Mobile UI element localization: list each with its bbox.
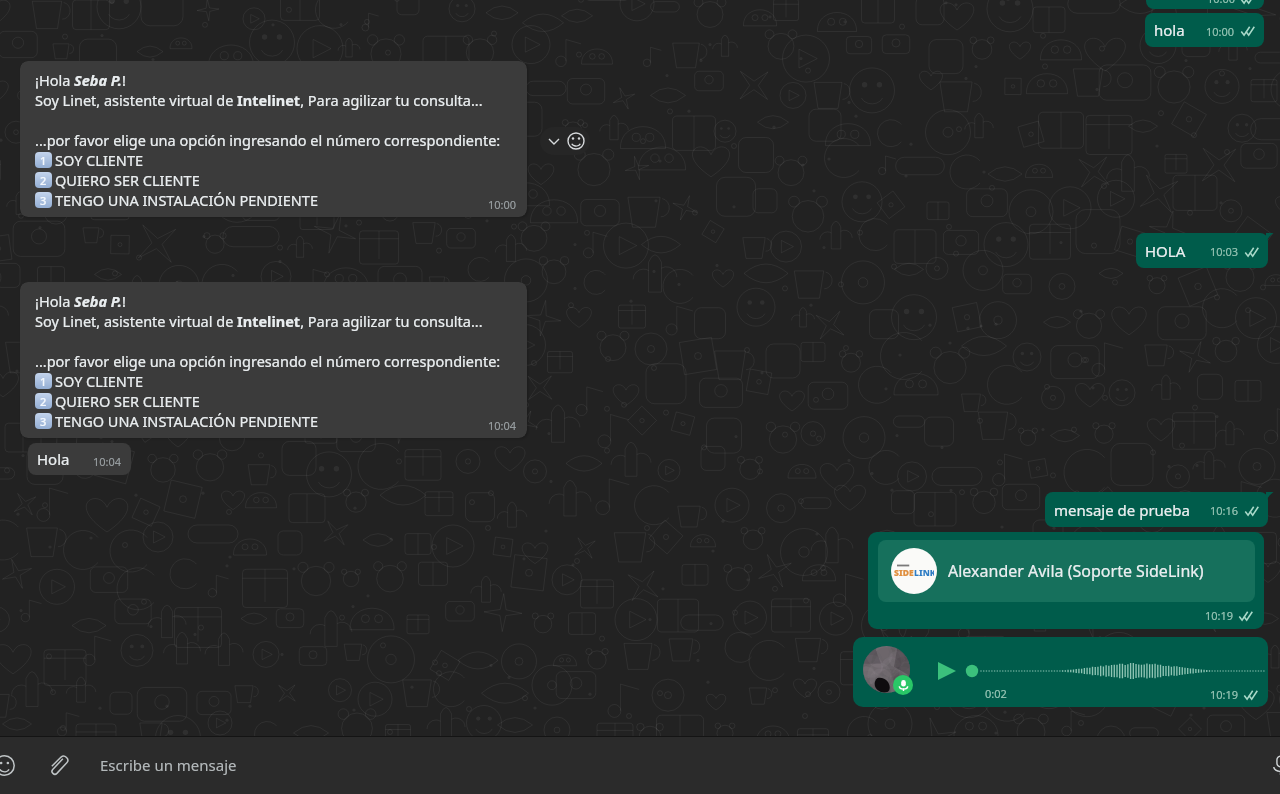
staticText: 1 <box>40 374 47 389</box>
staticText: ...por favor elige una opción ingresando… <box>35 351 501 371</box>
staticText: Soy Linet, asistente virtual de Inteline… <box>35 90 483 110</box>
staticText: ¡Hola Seba P.! <box>35 70 126 90</box>
staticText: 3 <box>40 193 47 208</box>
staticText: 10:19 <box>1205 608 1234 623</box>
button[interactable]: mensaje de prueba <box>1045 492 1268 527</box>
button[interactable]: SIDE <box>868 532 1264 629</box>
staticText: mensaje de prueba <box>1054 500 1190 520</box>
staticText: TENGO UNA INSTALACIÓN PENDIENTE <box>55 411 318 431</box>
staticText: 0:02 <box>985 686 1007 701</box>
staticText: 10:00 <box>1207 0 1236 6</box>
staticText: SOY CLIENTE <box>55 150 143 170</box>
staticText: QUIERO SER CLIENTE <box>55 391 200 411</box>
staticText: 1 <box>40 153 47 168</box>
staticText: 10:04 <box>93 454 122 469</box>
staticText: SIDE <box>894 567 914 579</box>
staticText: 10:00 <box>1206 24 1235 39</box>
staticText: ¡Hola Seba P.! <box>35 291 126 311</box>
staticText: 10:19 <box>1210 687 1239 702</box>
staticText: Alexander Avila (Soporte SideLink) <box>948 560 1204 582</box>
staticText: SOY CLIENTE <box>55 371 143 391</box>
button[interactable]: ¡Hola Seba P.! <box>20 61 527 217</box>
button[interactable]: HOLA <box>1136 233 1268 268</box>
staticText: 3 <box>40 414 47 429</box>
staticText: 10:16 <box>1210 503 1239 518</box>
button[interactable]: Escribe un mensaje <box>78 741 1238 789</box>
staticText: 10:00 <box>488 197 517 212</box>
staticText: QUIERO SER CLIENTE <box>55 170 200 190</box>
staticText: 10:03 <box>1210 244 1239 259</box>
staticText: 10:04 <box>488 418 517 433</box>
button[interactable]: 0:02 <box>853 637 1268 707</box>
staticText: 2 <box>40 173 47 188</box>
button[interactable]: Attach <box>38 745 78 785</box>
button[interactable]: 10:00 <box>1146 0 1264 9</box>
button[interactable]: Emoji <box>0 745 24 785</box>
button[interactable]: ¡Hola Seba P.! <box>20 282 527 438</box>
staticText: TENGO UNA INSTALACIÓN PENDIENTE <box>55 190 318 210</box>
staticText: LINK <box>914 567 934 579</box>
staticText: Soy Linet, asistente virtual de Inteline… <box>35 311 483 331</box>
button[interactable]: Hola <box>28 443 131 475</box>
button[interactable]: hola <box>1145 13 1264 47</box>
staticText: ...por favor elige una opción ingresando… <box>35 130 501 150</box>
staticText: Escribe un mensaje <box>100 755 237 775</box>
staticText: hola <box>1154 20 1185 40</box>
staticText: Hola <box>37 449 70 469</box>
staticText: HOLA <box>1145 241 1186 261</box>
staticText: 2 <box>40 394 47 409</box>
button[interactable]: Reactions <box>540 127 590 155</box>
button[interactable]: Voice message <box>1260 745 1280 785</box>
